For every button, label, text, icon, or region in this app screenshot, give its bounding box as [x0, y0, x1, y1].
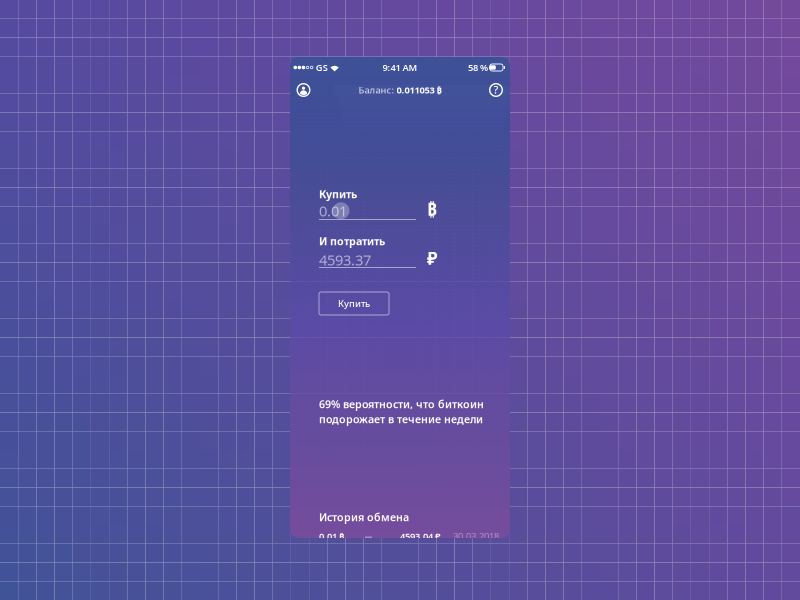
button[interactable]: Help	[482, 78, 510, 102]
staticText: 0.01 ₿	[319, 530, 344, 542]
staticText: 69% вероятности, что биткоин	[319, 397, 484, 411]
staticText: 0.011053 ₿	[396, 84, 441, 96]
staticText: 58 %	[468, 61, 488, 74]
staticText: GS	[316, 61, 328, 74]
staticText: И потратить	[319, 234, 385, 248]
button[interactable]: Купить	[319, 292, 389, 315]
staticText: ?	[493, 82, 498, 97]
staticText: 0.01	[319, 201, 347, 220]
staticText: Купить	[338, 297, 370, 310]
staticText: Баланс:	[358, 84, 394, 96]
staticText: ₿	[427, 197, 437, 220]
staticText: 4593.04 ₽	[400, 530, 441, 542]
staticText: подорожает в течение недели	[319, 412, 483, 426]
staticText: 30.03.2018	[453, 530, 499, 542]
staticText: ₽	[427, 246, 437, 269]
staticText: История обмена	[319, 510, 409, 524]
button[interactable]: Profile	[290, 78, 317, 102]
staticText: Купить	[319, 187, 357, 201]
staticText: 4593.37	[319, 250, 371, 269]
staticText: 9:41 AM	[382, 61, 417, 74]
